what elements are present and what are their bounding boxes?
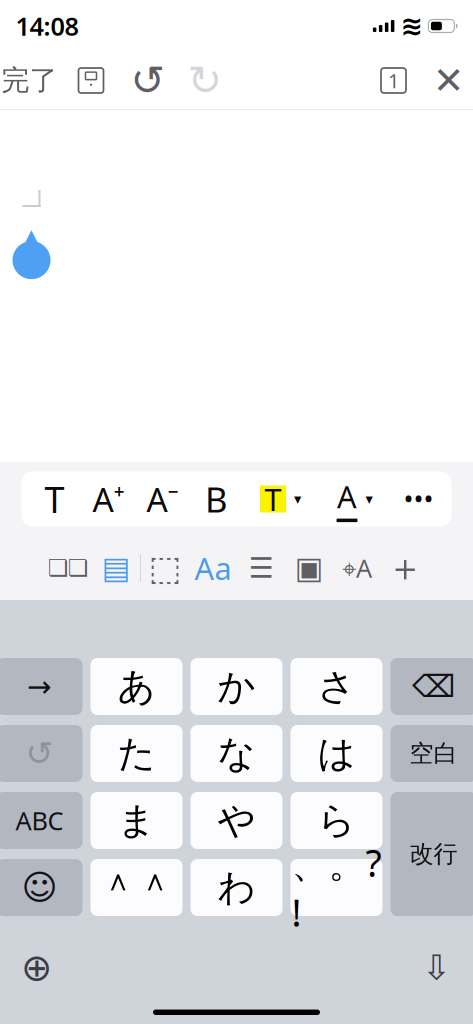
button[interactable]: な	[190, 725, 282, 782]
staticText: T	[264, 479, 281, 519]
staticText: な	[217, 731, 255, 776]
button[interactable]: か	[190, 658, 282, 715]
staticText: ☺	[21, 868, 57, 907]
staticText: ⌫	[412, 669, 455, 704]
button[interactable]: T	[27, 473, 81, 525]
button[interactable]: Undo	[119, 52, 176, 109]
button[interactable]: Keyboard	[92, 536, 140, 600]
staticText: ▣	[294, 551, 323, 585]
button[interactable]: あ	[90, 658, 182, 715]
staticText: ▾	[294, 491, 301, 507]
staticText: A	[337, 476, 357, 517]
staticText: ま	[117, 798, 155, 843]
button[interactable]: 完了	[0, 52, 62, 109]
button[interactable]: More formatting	[391, 473, 445, 525]
staticText: ⇩	[422, 948, 451, 987]
staticText: Aa	[194, 548, 231, 588]
button[interactable]: Text highlight	[243, 473, 317, 525]
button[interactable]: た	[90, 725, 182, 782]
staticText: 14:08	[15, 9, 78, 43]
staticText: 1	[388, 67, 399, 94]
button[interactable]: Switch keyboard	[6, 941, 66, 993]
staticText: T	[44, 475, 64, 523]
staticText: わ	[217, 865, 255, 910]
button[interactable]: Insert	[381, 536, 429, 600]
button[interactable]: ABC	[0, 792, 82, 849]
staticText: ⊕	[21, 946, 52, 989]
button[interactable]: Alignment	[237, 536, 285, 600]
button[interactable]: Save	[62, 52, 119, 109]
staticText: B	[205, 476, 228, 522]
button[interactable]: 改行	[390, 792, 473, 916]
button[interactable]: ⌫	[390, 658, 473, 715]
staticText: さ	[317, 664, 355, 709]
staticText: ❏❏	[48, 555, 88, 581]
button[interactable]: A⁻	[135, 473, 189, 525]
staticText: A⁺	[92, 477, 124, 521]
staticText: ▾	[365, 491, 372, 507]
button[interactable]: 空白	[390, 725, 473, 782]
staticText: →	[27, 670, 52, 703]
staticText: や	[217, 798, 255, 843]
staticText: 、。?!	[291, 838, 381, 937]
staticText: ＾＾	[99, 865, 173, 910]
button[interactable]: Shapes	[44, 536, 92, 600]
staticText: ☰	[248, 552, 273, 584]
button[interactable]: Close	[420, 52, 473, 109]
button[interactable]: さ	[290, 658, 382, 715]
button[interactable]: Page thumbnails	[366, 52, 420, 109]
staticText: ↺	[130, 57, 165, 104]
staticText: A⁻	[146, 477, 178, 521]
button[interactable]: ＾＾	[90, 859, 182, 916]
staticText: ⌖A	[342, 551, 372, 585]
button[interactable]: ま	[90, 792, 182, 849]
button[interactable]: →	[0, 658, 82, 715]
button[interactable]: Text style	[189, 536, 237, 600]
button[interactable]: わ	[190, 859, 282, 916]
staticText: ↺	[25, 735, 53, 772]
button[interactable]: や	[190, 792, 282, 849]
staticText: ↻	[187, 57, 222, 104]
staticText: 空白	[409, 739, 457, 768]
button[interactable]: は	[290, 725, 382, 782]
staticText: ✕	[433, 59, 464, 102]
staticText: か	[217, 664, 255, 709]
staticText: ABC	[15, 804, 63, 837]
staticText: ▤	[101, 551, 130, 585]
button[interactable]: ら	[290, 792, 382, 849]
staticText: 改行	[409, 839, 457, 869]
staticText: ⬚	[148, 548, 181, 588]
button[interactable]: Redo	[176, 52, 233, 109]
staticText: ら	[317, 798, 355, 843]
button[interactable]: B	[189, 473, 243, 525]
button[interactable]: Insert image	[285, 536, 333, 600]
staticText: ＋	[386, 545, 423, 591]
staticText: 完了	[1, 63, 57, 98]
staticText: ▲	[21, 223, 42, 253]
staticText: •••	[403, 481, 433, 517]
button[interactable]: Selection	[141, 536, 189, 600]
button[interactable]: Font color	[317, 473, 391, 525]
staticText: あ	[117, 664, 155, 709]
staticText: ≋	[400, 11, 422, 41]
button[interactable]: Dictation	[406, 941, 466, 993]
staticText: た	[117, 731, 155, 776]
staticText: は	[317, 731, 355, 776]
button[interactable]: Translate	[333, 536, 381, 600]
button[interactable]: ☺	[0, 859, 82, 916]
button[interactable]: A⁺	[81, 473, 135, 525]
button[interactable]: 、。?!	[290, 859, 382, 916]
button[interactable]: ↺	[0, 725, 82, 782]
